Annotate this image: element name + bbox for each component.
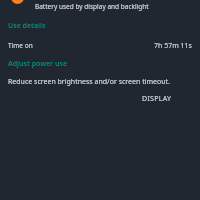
- staticText: DISPLAY: [142, 94, 172, 104]
- staticText: Battery used by display and backlight: [35, 2, 149, 11]
- button[interactable]: Use details: [0, 16, 200, 29]
- staticText: Reduce screen brightness and/or screen t…: [8, 77, 170, 87]
- button[interactable]: DISPLAY: [136, 90, 178, 108]
- staticText: Adjust power use: [8, 59, 67, 69]
- staticText: Time on: [8, 41, 33, 50]
- staticText: 7h 57m 11s: [154, 41, 192, 51]
- button[interactable]: Time on: [0, 36, 200, 50]
- other: Display app icon: [11, 0, 24, 4]
- staticText: Use details: [8, 21, 46, 31]
